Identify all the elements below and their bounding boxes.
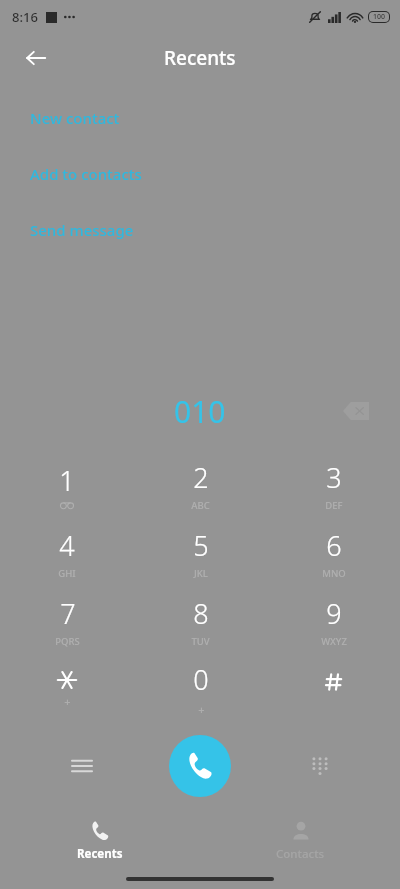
staticText: New contact bbox=[30, 108, 120, 128]
staticText: 3 bbox=[326, 459, 342, 496]
button[interactable]: 5 bbox=[134, 519, 267, 587]
staticText: JKL bbox=[194, 567, 208, 580]
staticText: Send message bbox=[30, 220, 134, 240]
staticText: MNO bbox=[322, 567, 346, 580]
staticText: DEF bbox=[325, 499, 343, 512]
staticText: 1 bbox=[59, 462, 75, 499]
button[interactable]: Backspace bbox=[336, 391, 376, 431]
button[interactable]: 7 bbox=[0, 587, 134, 655]
button[interactable]: 0 bbox=[134, 655, 267, 723]
button[interactable]: 4 bbox=[0, 519, 134, 587]
staticText: TUV bbox=[191, 635, 210, 648]
staticText: 4 bbox=[59, 527, 75, 564]
button[interactable]: Back bbox=[14, 36, 58, 80]
staticText: + bbox=[64, 694, 71, 709]
button[interactable]: Add to contacts bbox=[30, 162, 142, 186]
button[interactable]: Dialpad bbox=[298, 744, 342, 788]
staticText: Recents bbox=[164, 45, 236, 71]
staticText: GHI bbox=[58, 567, 76, 580]
staticText: WXYZ bbox=[321, 635, 347, 648]
staticText: 8 bbox=[193, 595, 209, 632]
staticText: 2 bbox=[193, 459, 209, 496]
staticText: 100 bbox=[373, 12, 386, 22]
staticText: 010 bbox=[174, 391, 226, 432]
staticText: ABC bbox=[191, 499, 210, 512]
staticText: Recents bbox=[77, 846, 123, 862]
staticText: 0 bbox=[193, 661, 209, 698]
staticText: 9 bbox=[326, 595, 342, 632]
staticText: Add to contacts bbox=[30, 164, 142, 184]
button[interactable]: 8 bbox=[134, 587, 267, 655]
button[interactable]: 9 bbox=[267, 587, 400, 655]
staticText: 8:16 bbox=[12, 8, 38, 26]
staticText: Contacts bbox=[276, 846, 325, 862]
staticText: 7 bbox=[60, 595, 76, 632]
button[interactable]: Recents bbox=[0, 815, 200, 867]
button[interactable]: Menu bbox=[60, 744, 104, 788]
button[interactable] bbox=[267, 655, 400, 723]
button[interactable]: Call bbox=[169, 735, 231, 797]
button[interactable]: + bbox=[0, 655, 134, 723]
staticText: PQRS bbox=[55, 635, 80, 648]
staticText: 5 bbox=[193, 527, 209, 564]
staticText: + bbox=[198, 702, 205, 717]
button[interactable]: 6 bbox=[267, 519, 400, 587]
button[interactable]: 1 bbox=[0, 451, 134, 519]
staticText: 6 bbox=[326, 527, 342, 564]
button[interactable]: Send message bbox=[30, 218, 134, 242]
button[interactable]: New contact bbox=[30, 106, 120, 130]
button[interactable]: 3 bbox=[267, 451, 400, 519]
button[interactable]: 2 bbox=[134, 451, 267, 519]
